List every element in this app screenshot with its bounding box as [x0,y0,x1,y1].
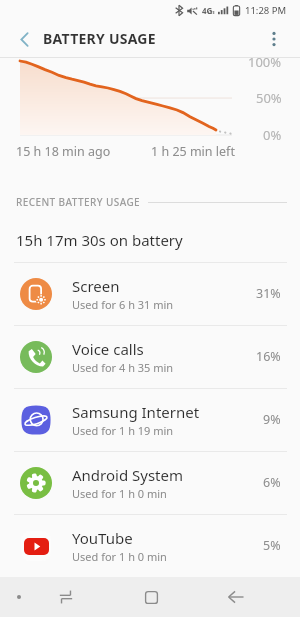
staticText: BATTERY USAGE [43,29,156,48]
button[interactable]: Screen [0,262,300,325]
button[interactable]: Assistant [3,577,35,617]
staticText: Samsung Internet [72,402,200,422]
staticText: 9% [263,411,281,428]
button[interactable]: More options [258,23,290,55]
staticText: 16% [256,348,281,365]
staticText: 5% [263,537,281,554]
staticText: 15h 17m 30s on battery [16,230,183,250]
button[interactable]: Android System [0,451,300,514]
staticText: Screen [72,276,120,296]
button[interactable]: Voice calls [0,325,300,388]
staticText: 50% [256,89,282,103]
staticText: 6% [263,474,281,491]
staticText: Used for 4 h 35 min [72,360,174,375]
staticText: LTE [208,10,215,15]
staticText: Voice calls [72,339,144,359]
button[interactable]: YouTube [0,514,300,577]
staticText: 4G [202,5,213,16]
staticText: 15 h 18 min ago [16,143,111,160]
button[interactable]: Home [131,577,171,617]
staticText: Used for 1 h 19 min [72,423,174,438]
staticText: RECENT BATTERY USAGE [16,195,141,209]
button[interactable]: Back [216,577,256,617]
staticText: 31% [256,285,281,302]
staticText: 100% [248,58,282,70]
staticText: Used for 1 h 0 min [72,549,167,564]
button[interactable]: Recent apps [46,577,86,617]
staticText: 11:28 PM [245,4,287,17]
button[interactable]: Samsung Internet [0,388,300,451]
staticText: Android System [72,465,184,485]
staticText: Used for 6 h 31 min [72,297,174,312]
staticText: YouTube [72,528,133,548]
staticText: 0% [263,126,282,140]
staticText: Used for 1 h 0 min [72,486,167,501]
button[interactable]: Navigate up [8,23,40,55]
staticText: 1 h 25 min left [151,143,235,160]
